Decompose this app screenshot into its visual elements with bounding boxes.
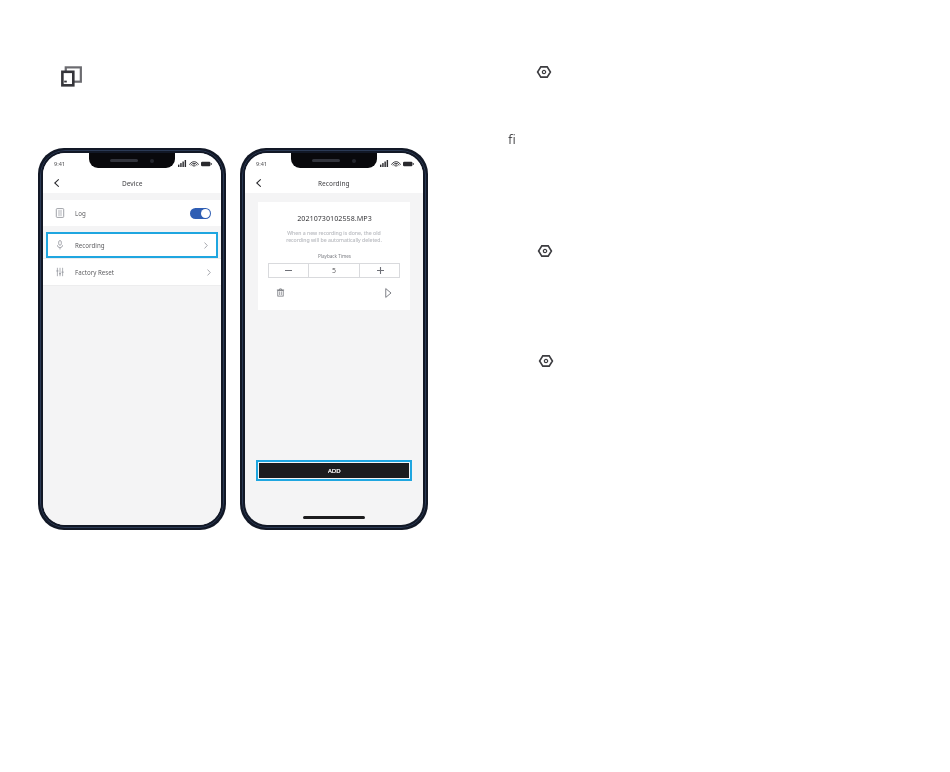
- button[interactable]: Setting: [536, 64, 552, 80]
- button[interactable]: Back: [49, 175, 65, 191]
- button[interactable]: Setting: [538, 353, 554, 369]
- staticText: Recording: [75, 241, 105, 249]
- staticText: 5: [332, 266, 337, 276]
- button[interactable]: Setting: [537, 243, 553, 259]
- button[interactable]: Recording: [46, 232, 218, 258]
- staticText: Factory Reset: [75, 268, 114, 276]
- staticText: 9:41: [256, 160, 267, 167]
- staticText: Recording: [318, 179, 350, 188]
- button[interactable]: Play: [381, 286, 394, 299]
- staticText: Device: [122, 179, 143, 188]
- button[interactable]: Devices: [59, 64, 85, 90]
- button[interactable]: Back: [251, 175, 267, 191]
- staticText: ADD: [328, 467, 341, 475]
- button[interactable]: ADD: [259, 463, 409, 478]
- staticText: 20210730102558.MP3: [297, 213, 372, 223]
- button[interactable]: Decrease: [268, 263, 308, 278]
- button[interactable]: Delete: [274, 286, 287, 299]
- staticText: Log: [75, 209, 86, 217]
- staticText: Playback Times: [318, 253, 351, 259]
- button[interactable]: Increase: [360, 263, 400, 278]
- staticText: When a new recording is done, the old re…: [286, 229, 382, 244]
- staticText: 9:41: [54, 160, 65, 167]
- staticText: fi: [508, 130, 516, 148]
- button[interactable]: Log: [43, 200, 221, 226]
- button[interactable]: Factory Reset: [43, 259, 221, 285]
- button[interactable]: Log toggle: [190, 208, 211, 219]
